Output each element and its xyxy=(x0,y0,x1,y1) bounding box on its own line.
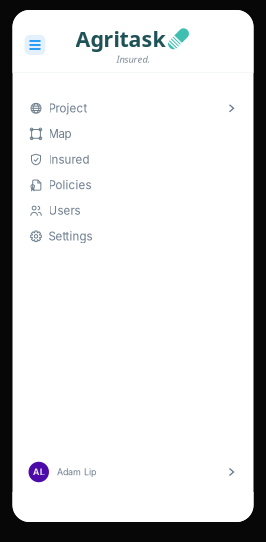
staticText: Settings xyxy=(48,229,92,243)
staticText: Insured xyxy=(48,153,89,166)
button[interactable]: Users xyxy=(12,198,253,223)
button[interactable]: Map xyxy=(12,121,253,147)
staticText: Users xyxy=(48,204,80,218)
button[interactable]: Settings xyxy=(12,223,253,249)
staticText: Policies xyxy=(48,178,91,192)
button[interactable]: Insured xyxy=(12,147,253,172)
button[interactable]: AL xyxy=(12,452,253,492)
button[interactable]: Menu xyxy=(24,35,45,55)
staticText: AL xyxy=(33,466,45,478)
staticText: Project xyxy=(48,101,87,115)
staticText: Map xyxy=(48,127,71,141)
staticText: Agritask xyxy=(75,25,165,53)
button[interactable]: Project xyxy=(12,95,253,121)
staticText: Adam Lip xyxy=(57,467,96,477)
staticText: Insured. xyxy=(116,53,149,65)
button[interactable]: Policies xyxy=(12,172,253,198)
